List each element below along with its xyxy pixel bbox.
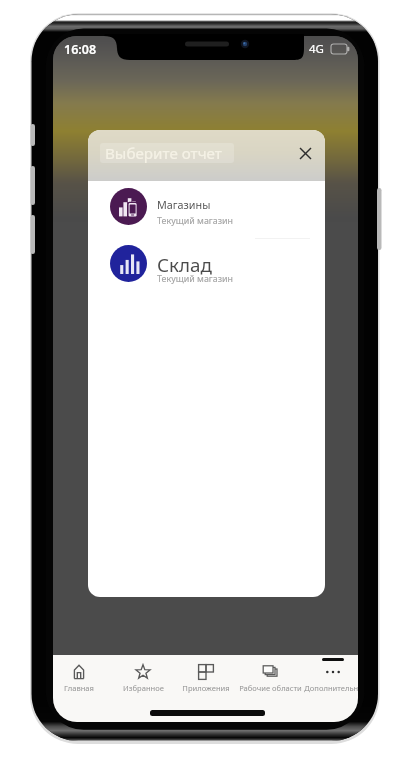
button[interactable]: Закрыть	[292, 140, 318, 166]
staticText: Главная	[64, 683, 94, 693]
staticText: Избранное	[123, 683, 164, 693]
staticText: 4G	[309, 41, 324, 57]
button[interactable]: Рабочие области	[238, 655, 302, 710]
staticText: Склад	[157, 252, 212, 278]
button[interactable]: Главная	[53, 655, 111, 710]
staticText: Текущий магазин	[157, 214, 233, 226]
button[interactable]: Склад	[88, 235, 325, 292]
staticText: 16:08	[64, 41, 97, 58]
staticText: Текущий магазин	[157, 272, 233, 284]
staticText: Приложения	[182, 683, 230, 693]
button[interactable]: Избранное	[111, 655, 175, 710]
button[interactable]: Дополнительно	[301, 655, 358, 710]
staticText: Выберите отчет	[105, 143, 222, 164]
staticText: Рабочие области	[239, 683, 302, 693]
button[interactable]: Приложения	[174, 655, 238, 710]
button[interactable]: Магазины	[88, 178, 325, 235]
staticText: Дополнительно	[304, 683, 358, 693]
staticText: Магазины	[157, 197, 211, 212]
